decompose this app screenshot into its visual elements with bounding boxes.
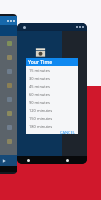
staticText: 15 minutes <box>29 68 50 73</box>
button[interactable]: 90 minutes <box>26 98 78 106</box>
button[interactable]: 45 minutes <box>26 82 78 90</box>
staticText: 90 minutes <box>29 100 50 105</box>
staticText: 180 minutes <box>29 124 53 129</box>
button[interactable]: 120 minutes <box>26 106 78 114</box>
button[interactable]: 30 minutes <box>26 74 78 82</box>
button[interactable]: 60 minutes <box>26 90 78 98</box>
staticText: 150 minutes <box>29 116 53 121</box>
button[interactable]: 15 minutes <box>26 66 78 74</box>
button[interactable]: 150 minutes <box>26 114 78 122</box>
staticText: 30 minutes <box>29 76 50 81</box>
button[interactable]: 180 minutes <box>26 122 78 130</box>
staticText: 120 minutes <box>29 108 53 113</box>
button[interactable]: CANCEL <box>60 130 75 134</box>
staticText: 45 minutes <box>29 84 50 89</box>
staticText: Your Time <box>28 59 53 66</box>
staticText: 60 minutes <box>29 92 50 97</box>
